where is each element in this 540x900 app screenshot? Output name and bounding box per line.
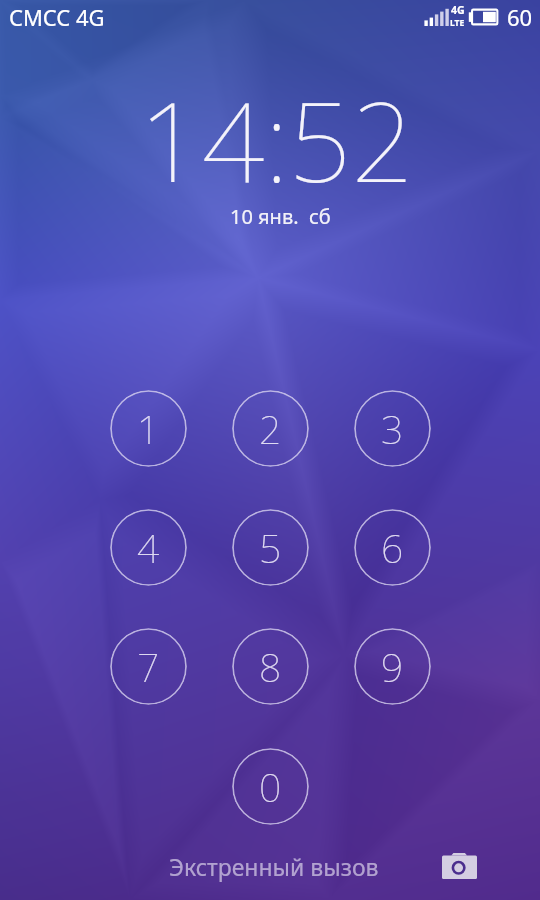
button[interactable]: Экстренный вызов (157, 845, 391, 888)
staticText: 4G (451, 3, 465, 17)
button[interactable]: 2 (232, 390, 309, 467)
staticText: 5 (259, 521, 282, 574)
staticText: 9 (381, 640, 404, 693)
button[interactable]: 6 (354, 509, 431, 586)
staticText: 7 (137, 640, 160, 693)
staticText: Экстренный вызов (169, 851, 379, 882)
staticText: LTE (450, 17, 465, 29)
staticText: 2 (259, 402, 282, 455)
button[interactable]: 8 (232, 628, 309, 705)
staticText: 6 (381, 521, 404, 574)
staticText: 1 (137, 402, 160, 455)
button[interactable]: 7 (110, 628, 187, 705)
staticText: CMCC 4G (9, 2, 105, 32)
staticText: 60 (507, 2, 533, 32)
staticText: 8 (259, 640, 282, 693)
button[interactable]: 3 (354, 390, 431, 467)
staticText: 10 янв. сб (230, 203, 331, 230)
button[interactable]: 9 (354, 628, 431, 705)
staticText: 0 (259, 760, 282, 813)
staticText: 14:52 (139, 64, 414, 214)
button[interactable]: 5 (232, 509, 309, 586)
staticText: 3 (381, 402, 404, 455)
staticText: 4 (137, 521, 160, 574)
button[interactable]: 4 (110, 509, 187, 586)
button[interactable]: 0 (232, 748, 309, 825)
button[interactable]: 1 (110, 390, 187, 467)
button[interactable]: Open camera (435, 842, 483, 890)
